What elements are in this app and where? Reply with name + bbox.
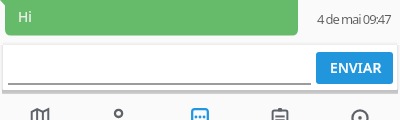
button[interactable]: ENVIAR xyxy=(316,52,393,84)
button[interactable]: Map xyxy=(0,94,80,120)
button[interactable]: Chat xyxy=(160,94,240,120)
staticText: ENVIAR xyxy=(330,58,382,77)
staticText: Hi xyxy=(18,7,32,26)
button[interactable]: Profile xyxy=(80,94,160,120)
staticText: 4 de mai 09:47 xyxy=(317,10,391,28)
button[interactable]: Tasks xyxy=(240,94,320,120)
button[interactable]: Location xyxy=(320,94,400,120)
